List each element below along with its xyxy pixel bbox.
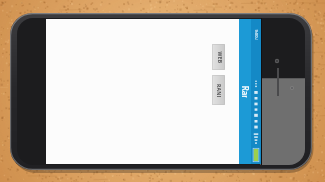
other: Proximity sensor — [288, 84, 296, 92]
staticText: RANDOM — [215, 84, 222, 97]
staticText: WEB — [215, 51, 222, 63]
other: Front camera — [273, 57, 281, 65]
staticText: Random Integer — [239, 85, 250, 97]
button[interactable]: Random Integer — [239, 19, 251, 164]
button[interactable]: RANDOM — [212, 75, 225, 105]
button[interactable]: WEB — [212, 44, 225, 70]
staticText: 9:00 AM — [253, 29, 258, 39]
